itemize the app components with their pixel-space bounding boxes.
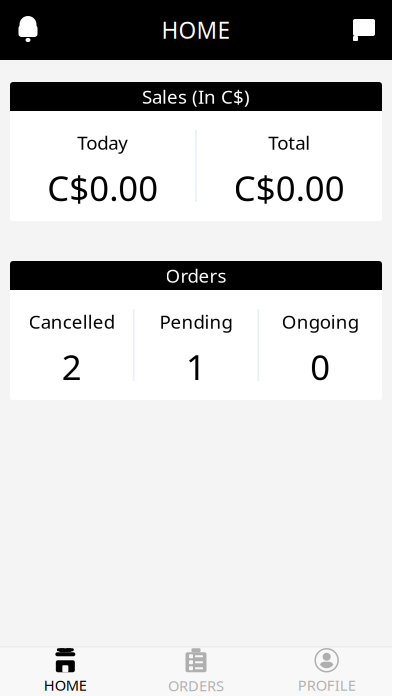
button[interactable]: ORDERS (131, 647, 261, 695)
staticText: Ongoing (282, 309, 359, 334)
staticText: 1 (186, 344, 206, 390)
staticText: PROFILE (298, 675, 356, 695)
staticText: HOME (161, 15, 230, 45)
button[interactable]: PROFILE (261, 647, 392, 695)
staticText: C$0.00 (47, 165, 158, 211)
button[interactable]: Messages (336, 10, 392, 50)
staticText: 0 (310, 344, 330, 390)
button[interactable]: Notifications (0, 10, 56, 50)
button[interactable]: HOME (0, 647, 131, 695)
staticText: Pending (159, 309, 232, 334)
staticText: Sales (In C$) (142, 84, 250, 109)
staticText: Today (77, 130, 128, 155)
staticText: HOME (44, 675, 87, 695)
staticText: 2 (62, 344, 82, 390)
staticText: Total (268, 130, 310, 155)
staticText: C$0.00 (234, 165, 345, 211)
staticText: ORDERS (168, 676, 224, 695)
staticText: Orders (165, 263, 226, 288)
staticText: Cancelled (29, 309, 115, 334)
